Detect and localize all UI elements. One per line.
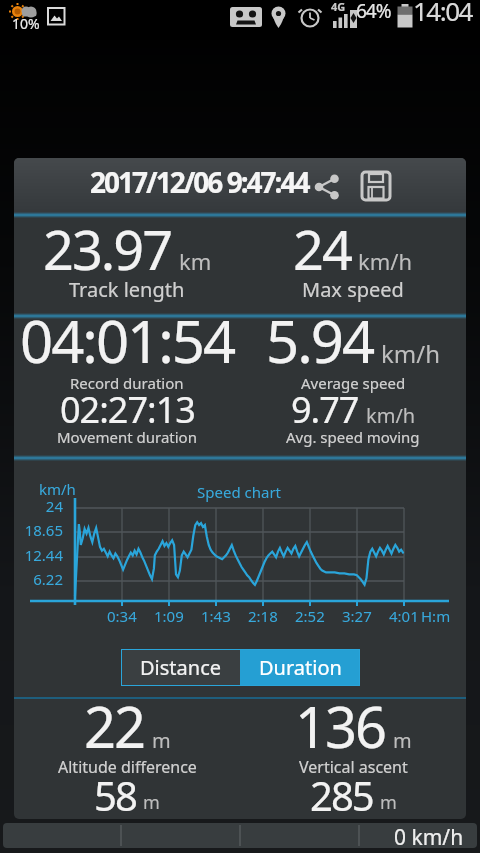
staticText: m <box>152 727 171 754</box>
staticText: 3:27 <box>342 606 372 626</box>
staticText: 285 <box>310 768 373 819</box>
staticText: km <box>179 246 212 276</box>
button[interactable]: Distance <box>121 649 240 686</box>
staticText: 1:43 <box>201 606 231 626</box>
staticText: Vertical ascent <box>299 756 408 778</box>
staticText: 2017/12/06 9:47:44 <box>90 163 309 201</box>
button[interactable] <box>360 170 392 202</box>
staticText: 2:18 <box>248 606 278 626</box>
staticText: Max speed <box>302 276 404 303</box>
staticText: 6.22 <box>19 569 63 589</box>
staticText: km/h <box>39 479 76 499</box>
staticText: 5.94 <box>266 301 374 380</box>
staticText: 10% <box>12 14 40 33</box>
staticText: 0 km/h <box>394 823 464 848</box>
staticText: Speed chart <box>197 482 282 502</box>
staticText: 2:52 <box>295 606 325 626</box>
staticText: H:m <box>421 606 451 626</box>
staticText: 04:01:54 <box>20 301 235 380</box>
staticText: Distance <box>140 654 222 681</box>
staticText: km/h <box>381 337 441 370</box>
staticText: 136 <box>295 688 386 764</box>
staticText: m <box>143 790 160 815</box>
staticText: 4G <box>331 0 346 14</box>
staticText: 22 <box>84 688 145 764</box>
staticText: Track length <box>69 276 185 303</box>
staticText: km/h <box>366 402 416 429</box>
staticText: 64% <box>356 0 391 24</box>
staticText: Movement duration <box>57 427 197 447</box>
button[interactable]: Duration <box>240 649 360 686</box>
staticText: Record duration <box>70 373 184 393</box>
staticText: Average speed <box>301 373 406 393</box>
staticText: 1:09 <box>154 606 184 626</box>
staticText: Altitude difference <box>58 756 197 778</box>
staticText: 0:34 <box>107 606 137 626</box>
staticText: 24 <box>19 496 63 516</box>
button[interactable] <box>314 174 340 200</box>
staticText: Avg. speed moving <box>286 427 420 447</box>
staticText: 12.44 <box>19 545 63 565</box>
staticText: 9.77 <box>291 385 359 434</box>
staticText: 4:01 <box>389 606 419 626</box>
staticText: m <box>380 790 397 815</box>
staticText: km/h <box>358 246 413 276</box>
staticText: 58 <box>94 768 136 819</box>
staticText: 18.65 <box>19 520 63 540</box>
button[interactable]: 0 km/h <box>3 823 477 848</box>
staticText: m <box>393 727 412 754</box>
staticText: 14:04 <box>413 0 472 28</box>
staticText: 02:27:13 <box>60 385 195 434</box>
staticText: Duration <box>259 654 342 681</box>
staticText: 23.97 <box>43 212 172 286</box>
staticText: 24 <box>293 212 351 286</box>
